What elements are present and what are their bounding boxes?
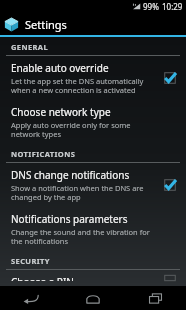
button[interactable]: Back: [0, 286, 62, 310]
button[interactable]: Home: [62, 286, 124, 310]
staticText: Notifications parameters: [11, 212, 128, 226]
button[interactable]: Recent apps: [124, 286, 186, 310]
staticText: Let the app set the DNS automatically wh…: [11, 76, 154, 95]
button[interactable]: Unchecked: [160, 275, 180, 281]
staticText: GENERAL: [11, 42, 49, 52]
staticText: Enable auto override: [11, 61, 109, 75]
staticText: 99%: [143, 1, 159, 12]
staticText: NOTIFICATIONS: [11, 149, 76, 159]
button[interactable]: Settings: [0, 13, 186, 35]
staticText: SECURITY: [11, 256, 50, 266]
staticText: DNS change notifications: [11, 168, 130, 182]
button[interactable]: Enable auto override: [0, 56, 186, 100]
button[interactable]: Choose a PIN: [0, 270, 186, 286]
button[interactable]: Choose network type: [0, 100, 186, 144]
staticText: Choose a PIN: [11, 275, 74, 281]
staticText: Choose network type: [11, 105, 111, 119]
staticText: Settings: [25, 17, 67, 32]
staticText: Show a notification when the DNS are cha…: [11, 183, 154, 202]
button[interactable]: DNS change notifications: [0, 163, 186, 207]
button[interactable]: Checked: [160, 175, 180, 195]
staticText: Apply auto override only for some networ…: [11, 120, 160, 139]
button[interactable]: Notifications parameters: [0, 207, 186, 251]
staticText: Change the sound and the vibration for t…: [11, 227, 160, 246]
button[interactable]: Checked: [160, 68, 180, 88]
staticText: 10:29: [162, 1, 183, 12]
